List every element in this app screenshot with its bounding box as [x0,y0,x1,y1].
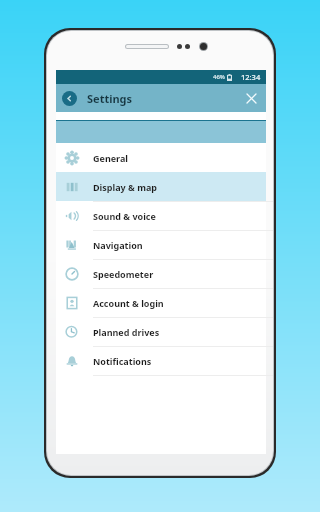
button[interactable]: Back [62,91,77,106]
button[interactable]: Planned drives [56,317,266,346]
button[interactable]: Close [240,87,262,109]
staticText: 12:34 [241,72,261,82]
staticText: Navigation [93,239,143,251]
button[interactable]: Sound & voice [56,201,266,230]
staticText: Account & login [93,297,164,309]
staticText: Planned drives [93,326,160,338]
staticText: Settings [87,91,133,106]
button[interactable]: Navigation [56,230,266,259]
button[interactable]: Display & map [56,172,266,201]
staticText: Notifications [93,355,152,367]
button[interactable]: General [56,143,266,172]
button[interactable]: Speedometer [56,259,266,288]
button[interactable]: Account & login [56,288,266,317]
staticText: 46% [213,73,225,81]
staticText: General [93,152,129,164]
staticText: Sound & voice [93,210,156,222]
staticText: Speedometer [93,268,154,280]
staticText: Display & map [93,181,157,193]
button[interactable]: Notifications [56,346,266,375]
